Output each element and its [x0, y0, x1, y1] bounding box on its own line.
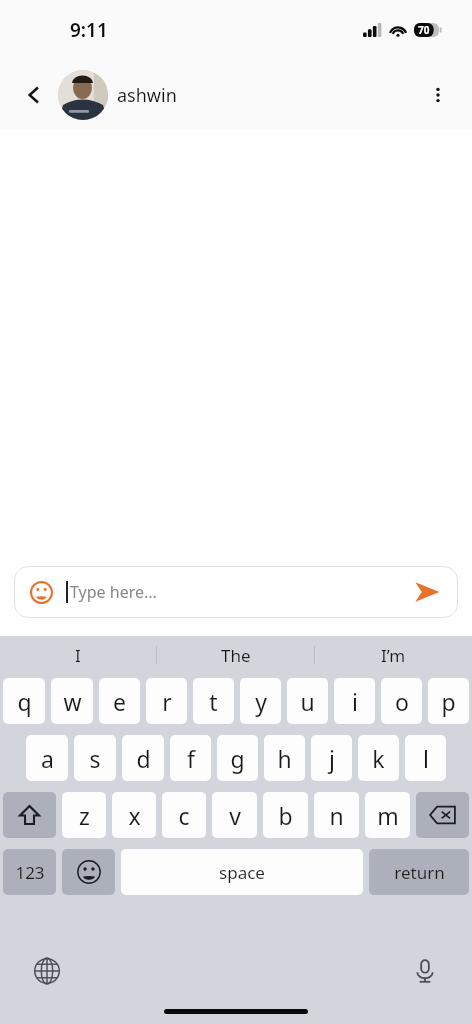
- button[interactable]: I: [0, 636, 156, 674]
- button[interactable]: h: [264, 735, 305, 781]
- staticText: I: [75, 644, 81, 667]
- button[interactable]: o: [381, 678, 422, 724]
- button[interactable]: l: [405, 735, 446, 781]
- staticText: f: [187, 743, 195, 774]
- button[interactable]: b: [263, 792, 308, 838]
- button[interactable]: k: [358, 735, 399, 781]
- button[interactable]: ashwin: [58, 70, 177, 120]
- button[interactable]: I’m: [315, 636, 472, 674]
- button[interactable]: The: [157, 636, 314, 674]
- button[interactable]: Send: [410, 575, 444, 609]
- button[interactable]: y: [240, 678, 281, 724]
- staticText: 123: [15, 861, 45, 884]
- staticText: i: [352, 686, 358, 717]
- button[interactable]: c: [162, 792, 206, 838]
- staticText: 9:11: [70, 17, 108, 43]
- button[interactable]: Dictate: [408, 954, 442, 988]
- button[interactable]: return: [369, 849, 469, 895]
- button[interactable]: Emoji: [14, 566, 458, 618]
- staticText: u: [300, 686, 315, 717]
- staticText: x: [128, 800, 141, 831]
- button[interactable]: n: [314, 792, 359, 838]
- staticText: The: [221, 644, 251, 667]
- button[interactable]: j: [311, 735, 352, 781]
- button[interactable]: space: [121, 849, 363, 895]
- staticText: Type here...: [70, 581, 157, 603]
- staticText: z: [79, 800, 90, 831]
- button[interactable]: Change keyboard language: [30, 954, 64, 988]
- button[interactable]: d: [122, 735, 164, 781]
- staticText: return: [394, 861, 445, 884]
- button[interactable]: u: [287, 678, 328, 724]
- button[interactable]: Back: [16, 77, 52, 113]
- button[interactable]: v: [212, 792, 257, 838]
- button[interactable]: Backspace: [416, 792, 469, 838]
- staticText: 70: [418, 23, 430, 37]
- button[interactable]: x: [112, 792, 156, 838]
- staticText: y: [255, 686, 267, 717]
- staticText: s: [89, 743, 101, 774]
- staticText: t: [209, 686, 218, 717]
- button[interactable]: q: [3, 678, 45, 724]
- button[interactable]: r: [146, 678, 187, 724]
- staticText: d: [136, 743, 151, 774]
- staticText: w: [63, 686, 82, 717]
- staticText: m: [377, 800, 399, 831]
- staticText: o: [395, 686, 409, 717]
- staticText: p: [441, 686, 456, 717]
- staticText: v: [229, 800, 241, 831]
- staticText: space: [219, 861, 265, 884]
- button[interactable]: i: [334, 678, 375, 724]
- button[interactable]: Emoji: [28, 579, 54, 605]
- staticText: r: [162, 686, 172, 717]
- button[interactable]: m: [365, 792, 410, 838]
- button[interactable]: 123: [3, 849, 56, 895]
- button[interactable]: s: [74, 735, 116, 781]
- staticText: c: [178, 800, 190, 831]
- staticText: ashwin: [117, 83, 177, 108]
- button[interactable]: f: [170, 735, 211, 781]
- button[interactable]: e: [99, 678, 140, 724]
- button[interactable]: w: [51, 678, 93, 724]
- staticText: g: [230, 743, 245, 774]
- staticText: q: [17, 686, 32, 717]
- button[interactable]: t: [193, 678, 234, 724]
- staticText: b: [278, 800, 293, 831]
- staticText: a: [41, 743, 54, 774]
- button[interactable]: a: [26, 735, 68, 781]
- button[interactable]: g: [217, 735, 258, 781]
- button[interactable]: Emoji keyboard: [62, 849, 115, 895]
- staticText: e: [113, 686, 126, 717]
- button[interactable]: Shift: [3, 792, 56, 838]
- staticText: l: [423, 743, 429, 774]
- button[interactable]: More options: [420, 77, 456, 113]
- button[interactable]: z: [62, 792, 106, 838]
- staticText: h: [277, 743, 292, 774]
- staticText: j: [329, 743, 335, 774]
- staticText: k: [372, 743, 385, 774]
- button[interactable]: p: [428, 678, 469, 724]
- staticText: I’m: [381, 644, 406, 667]
- staticText: n: [329, 800, 344, 831]
